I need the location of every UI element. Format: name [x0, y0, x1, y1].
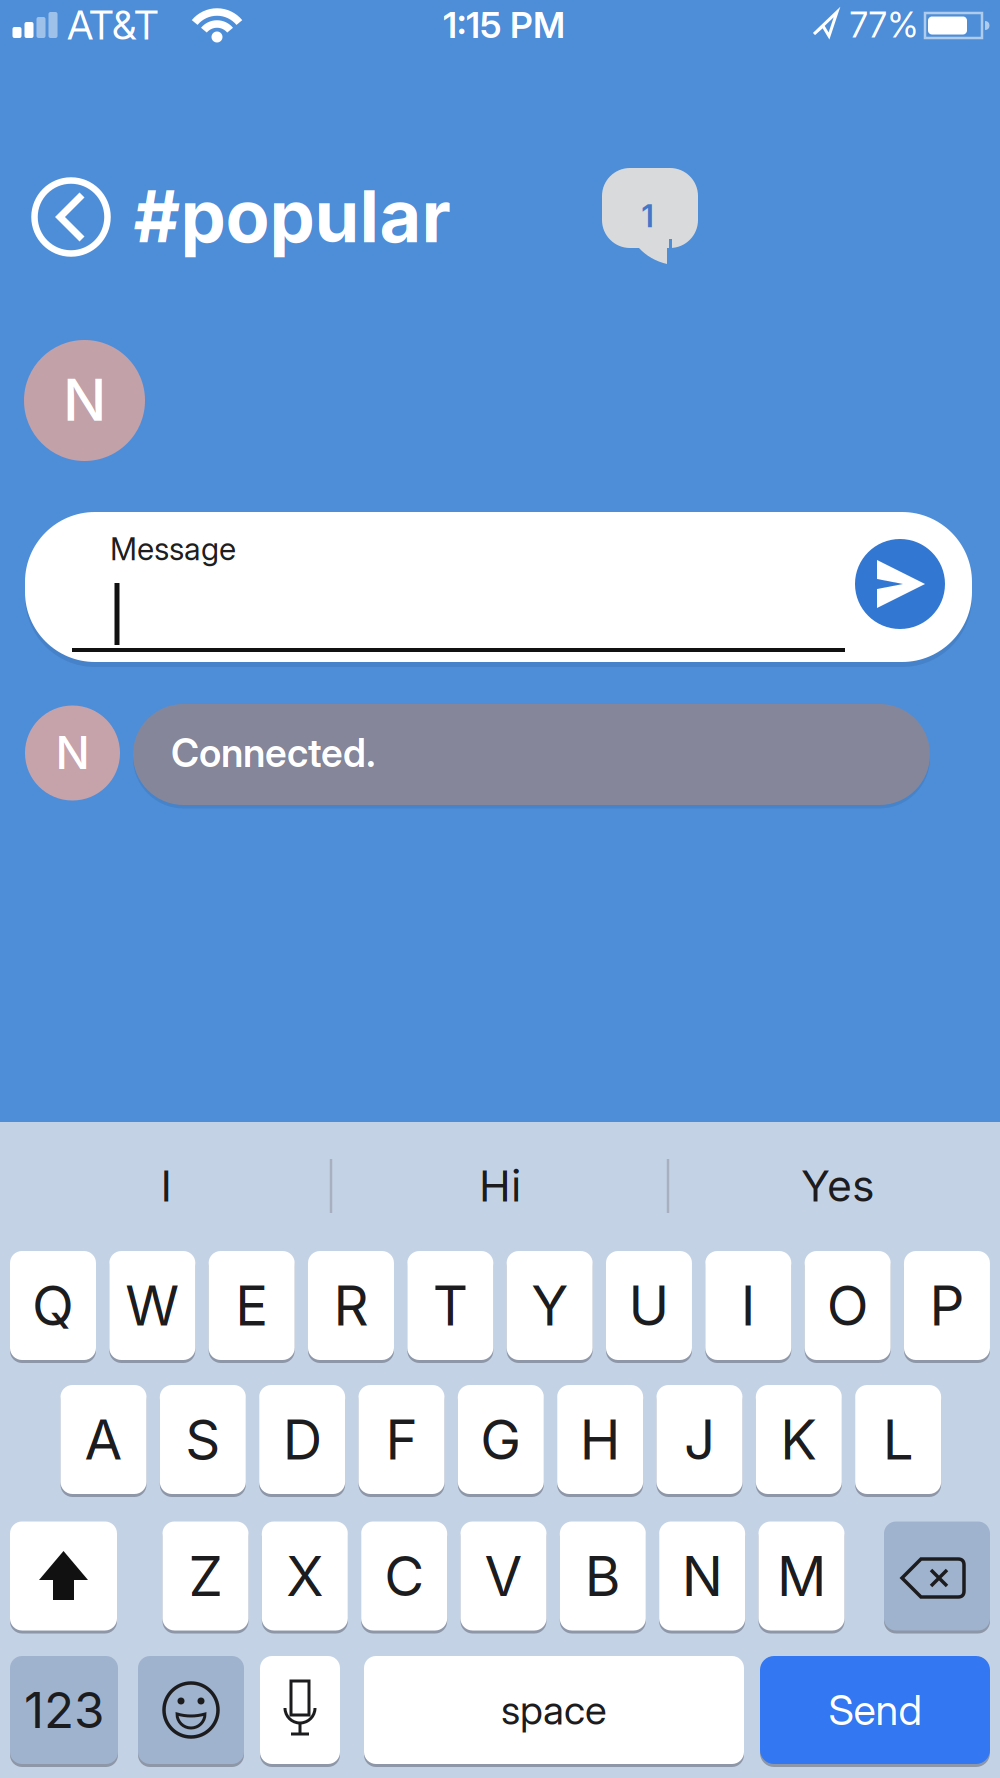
staticText: Y [531, 1272, 568, 1338]
staticText: C [384, 1543, 424, 1609]
button[interactable]: I [705, 1251, 791, 1360]
button[interactable]: P [904, 1251, 990, 1360]
staticText: F [385, 1406, 417, 1472]
staticText: N [55, 725, 89, 780]
staticText: U [628, 1272, 669, 1338]
staticText: K [780, 1406, 817, 1472]
button[interactable]: C [361, 1521, 447, 1630]
button[interactable]: J [656, 1385, 742, 1494]
button[interactable]: W [109, 1251, 195, 1360]
staticText: 1 [641, 197, 653, 234]
button[interactable]: U [606, 1251, 692, 1360]
staticText: #popular [133, 172, 450, 259]
staticText: AT&T [67, 1, 159, 49]
button[interactable]: Back [31, 177, 111, 257]
staticText: M [777, 1543, 826, 1609]
staticText: T [433, 1272, 468, 1338]
button[interactable]: E [209, 1251, 295, 1360]
button[interactable]: 123 [10, 1656, 118, 1764]
button[interactable]: Z [162, 1521, 248, 1630]
staticText: R [333, 1272, 368, 1338]
staticText: Message [110, 530, 236, 567]
button[interactable]: V [460, 1521, 546, 1630]
staticText: Z [188, 1543, 222, 1609]
staticText: 1:15 PM [443, 3, 565, 47]
button[interactable]: F [358, 1385, 444, 1494]
button[interactable]: Q [10, 1251, 96, 1360]
button[interactable]: Send message [855, 539, 945, 629]
button[interactable]: M [758, 1521, 844, 1630]
staticText: I [741, 1272, 756, 1338]
staticText: Yes [801, 1160, 875, 1212]
button[interactable]: Dictate [260, 1656, 340, 1764]
staticText: L [883, 1406, 914, 1472]
button[interactable]: B [560, 1521, 646, 1630]
staticText: X [286, 1543, 323, 1609]
button[interactable]: Y [507, 1251, 593, 1360]
staticText: N [63, 365, 106, 435]
staticText: space [501, 1686, 607, 1734]
button[interactable]: L [855, 1385, 941, 1494]
staticText: V [484, 1543, 522, 1609]
button[interactable]: Yes [678, 1131, 998, 1241]
staticText: J [684, 1406, 715, 1472]
staticText: Connected. [171, 730, 376, 776]
staticText: O [827, 1272, 869, 1338]
button[interactable]: D [259, 1385, 345, 1494]
button[interactable]: Hi [340, 1131, 660, 1241]
staticText: H [580, 1406, 621, 1472]
button[interactable]: Delete [884, 1521, 990, 1630]
staticText: B [585, 1543, 621, 1609]
staticText: W [125, 1272, 179, 1338]
staticText: S [185, 1406, 220, 1472]
staticText: 123 [24, 1680, 104, 1740]
button[interactable]: Send [760, 1656, 990, 1764]
staticText: D [283, 1406, 322, 1472]
button[interactable]: N [659, 1521, 745, 1630]
staticText: Q [32, 1272, 74, 1338]
button[interactable]: I [6, 1131, 326, 1241]
staticText: Send [828, 1685, 921, 1735]
staticText: A [84, 1406, 122, 1472]
staticText: N [682, 1543, 723, 1609]
staticText: I [160, 1160, 171, 1212]
staticText: E [235, 1272, 268, 1338]
staticText: P [929, 1272, 964, 1338]
button[interactable]: Emoji [138, 1656, 244, 1764]
button[interactable]: S [160, 1385, 246, 1494]
button[interactable]: Shift [10, 1521, 117, 1630]
button[interactable]: K [756, 1385, 842, 1494]
staticText: G [480, 1406, 521, 1472]
button[interactable]: space [364, 1656, 744, 1764]
button[interactable]: X [262, 1521, 348, 1630]
button[interactable]: R [308, 1251, 394, 1360]
button[interactable]: H [557, 1385, 643, 1494]
button[interactable]: O [805, 1251, 891, 1360]
button[interactable]: G [458, 1385, 544, 1494]
button[interactable]: T [407, 1251, 493, 1360]
staticText: 77% [849, 4, 918, 46]
staticText: Hi [479, 1160, 521, 1212]
button[interactable]: A [60, 1385, 146, 1494]
